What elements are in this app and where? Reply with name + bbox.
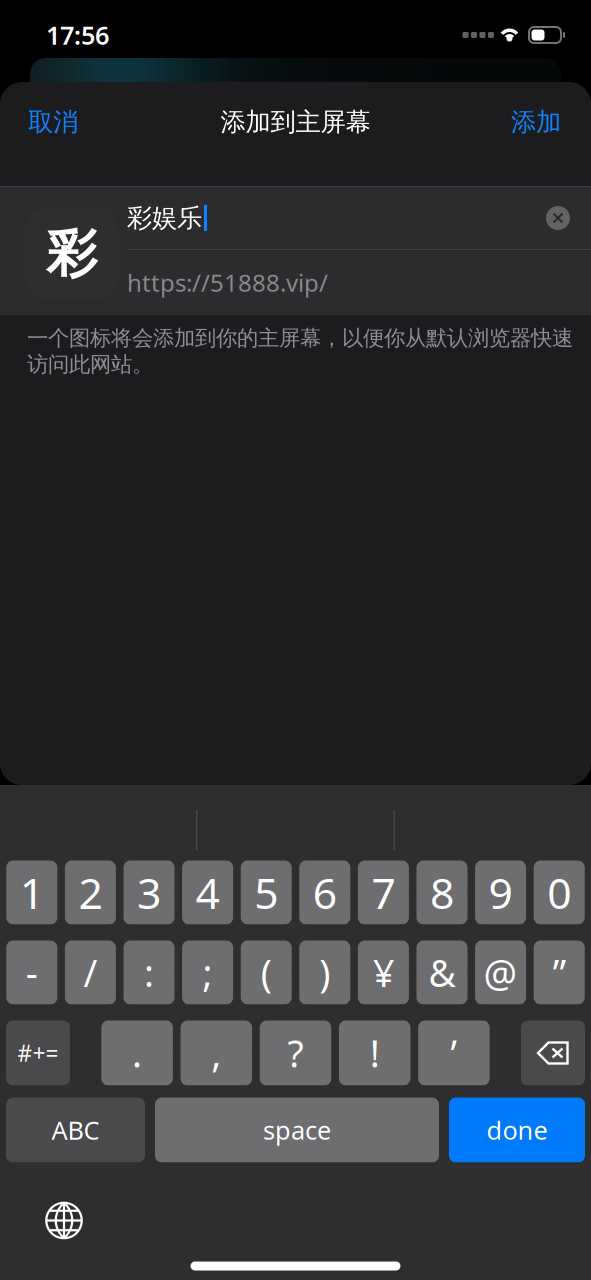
staticText: ’ (450, 1028, 457, 1078)
button[interactable]: 7 (358, 860, 409, 924)
button[interactable]: ’ (418, 1020, 490, 1085)
button[interactable]: 5 (241, 860, 292, 924)
staticText: 7 (371, 864, 395, 921)
staticText: ( (261, 948, 272, 997)
staticText: ” (553, 948, 566, 997)
button[interactable]: ABC (6, 1097, 145, 1162)
staticText: 彩 (46, 223, 97, 285)
button[interactable]: 添加 (497, 94, 591, 150)
staticText: ! (370, 1028, 380, 1078)
button[interactable]: ! (339, 1020, 410, 1085)
staticText: : (144, 948, 154, 997)
button[interactable]: 9 (475, 860, 526, 924)
staticText: 8 (430, 864, 454, 921)
staticText: . (132, 1028, 142, 1078)
staticText: - (26, 948, 38, 997)
staticText: 一个图标将会添加到你的主屏幕，以便你从默认浏览器快速访问此网站。 (27, 325, 573, 377)
staticText: 9 (489, 864, 513, 921)
staticText: ABC (51, 1113, 99, 1147)
button[interactable]: ? (260, 1020, 331, 1085)
button[interactable]: done (449, 1097, 585, 1162)
button[interactable]: 2 (65, 860, 116, 924)
staticText: 添加 (511, 106, 561, 137)
staticText: 取消 (28, 106, 78, 137)
staticText: ? (287, 1028, 303, 1078)
button[interactable]: / (65, 940, 116, 1004)
staticText: space (263, 1113, 331, 1147)
staticText: ) (319, 948, 330, 997)
button[interactable]: ” (534, 940, 585, 1004)
button[interactable]: space (155, 1097, 439, 1162)
staticText: #+= (17, 1038, 58, 1068)
staticText: 添加到主屏幕 (220, 106, 370, 137)
staticText: & (428, 948, 455, 997)
staticText: 1 (20, 864, 44, 921)
staticText: 6 (313, 864, 337, 921)
button[interactable]: 0 (534, 860, 585, 924)
button[interactable]: @ (475, 940, 526, 1004)
button[interactable]: & (416, 940, 467, 1004)
button[interactable]: #+= (6, 1020, 70, 1085)
button[interactable]: 3 (123, 860, 174, 924)
staticText: https://51888.vip/ (127, 267, 328, 298)
button[interactable]: ¥ (358, 940, 409, 1004)
button[interactable]: : (123, 940, 174, 1004)
staticText: 4 (196, 864, 220, 921)
button[interactable]: Clear text (542, 202, 574, 234)
button[interactable]: ) (299, 940, 350, 1004)
staticText: ¥ (373, 948, 394, 997)
button[interactable]: 6 (299, 860, 350, 924)
staticText: 3 (137, 864, 161, 921)
staticText: 0 (547, 864, 571, 921)
staticText: 5 (254, 864, 278, 921)
staticText: / (83, 948, 97, 997)
staticText: , (211, 1028, 221, 1078)
button[interactable]: 8 (416, 860, 467, 924)
button[interactable]: . (101, 1020, 173, 1085)
staticText: 17:56 (46, 18, 109, 52)
staticText: @ (484, 948, 518, 997)
staticText: done (486, 1113, 547, 1147)
button[interactable]: 1 (6, 860, 57, 924)
button[interactable]: , (181, 1020, 252, 1085)
staticText: 2 (78, 864, 102, 921)
button[interactable]: - (6, 940, 57, 1004)
button[interactable]: Delete (521, 1020, 585, 1085)
button[interactable]: 取消 (0, 94, 92, 150)
button[interactable]: ( (241, 940, 292, 1004)
button[interactable]: 4 (182, 860, 233, 924)
button[interactable]: ; (182, 940, 233, 1004)
button[interactable]: Switch keyboard (36, 1192, 92, 1248)
staticText: 彩娱乐 (127, 202, 202, 233)
staticText: ; (203, 948, 213, 997)
